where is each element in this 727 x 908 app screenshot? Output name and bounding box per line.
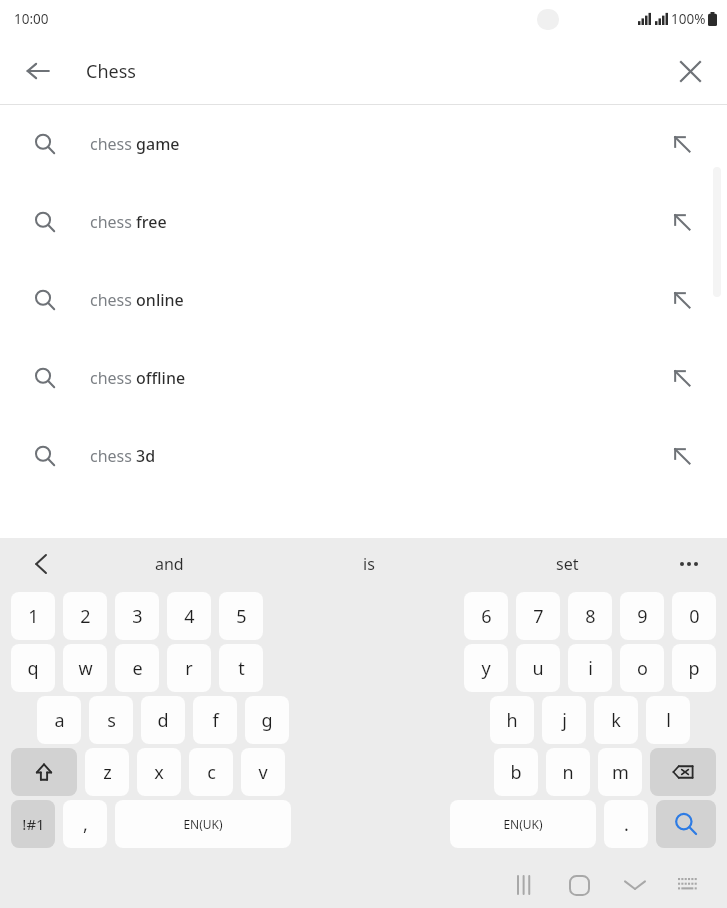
- button[interactable]: u: [516, 644, 560, 692]
- button[interactable]: a: [37, 696, 81, 744]
- button[interactable]: o: [620, 644, 664, 692]
- staticText: .: [624, 812, 629, 837]
- staticText: 4: [184, 604, 195, 629]
- button[interactable]: 1: [11, 592, 55, 640]
- button[interactable]: x: [137, 748, 181, 796]
- button[interactable]: Shift: [11, 748, 77, 796]
- staticText: r: [185, 656, 193, 681]
- staticText: chess free: [90, 211, 167, 233]
- button[interactable]: p: [672, 644, 716, 692]
- button[interactable]: 4: [167, 592, 211, 640]
- button[interactable]: i: [568, 644, 612, 692]
- button[interactable]: Insert suggestion: [637, 417, 727, 495]
- button[interactable]: chess 3d: [0, 417, 727, 495]
- button[interactable]: 0: [672, 592, 716, 640]
- button[interactable]: 6: [464, 592, 508, 640]
- staticText: z: [103, 760, 112, 785]
- staticText: chess online: [90, 289, 184, 311]
- button[interactable]: .: [604, 800, 648, 848]
- button[interactable]: q: [11, 644, 55, 692]
- staticText: chess game: [90, 133, 180, 155]
- button[interactable]: z: [85, 748, 129, 796]
- staticText: q: [27, 656, 39, 681]
- button[interactable]: chess game: [0, 105, 727, 183]
- button[interactable]: k: [594, 696, 638, 744]
- button[interactable]: Recents: [499, 862, 551, 908]
- staticText: EN(UK): [503, 816, 543, 832]
- staticText: o: [637, 656, 648, 681]
- staticText: l: [666, 708, 671, 733]
- button[interactable]: e: [115, 644, 159, 692]
- staticText: Chess: [86, 59, 136, 84]
- button[interactable]: v: [241, 748, 285, 796]
- button[interactable]: t: [219, 644, 263, 692]
- staticText: 0: [689, 604, 700, 629]
- staticText: v: [258, 760, 268, 785]
- staticText: EN(UK): [183, 816, 223, 832]
- staticText: and: [155, 553, 184, 575]
- staticText: x: [154, 760, 164, 785]
- button[interactable]: Previous suggestions: [22, 544, 62, 584]
- button[interactable]: chess online: [0, 261, 727, 339]
- button[interactable]: 9: [620, 592, 664, 640]
- button[interactable]: Insert suggestion: [637, 105, 727, 183]
- button[interactable]: f: [193, 696, 237, 744]
- button[interactable]: b: [494, 748, 538, 796]
- button[interactable]: 5: [219, 592, 263, 640]
- staticText: i: [588, 656, 593, 681]
- button[interactable]: 8: [568, 592, 612, 640]
- staticText: 5: [236, 604, 247, 629]
- button[interactable]: Home: [551, 862, 607, 908]
- button[interactable]: w: [63, 644, 107, 692]
- button[interactable]: y: [464, 644, 508, 692]
- button[interactable]: and: [70, 538, 269, 590]
- button[interactable]: chess free: [0, 183, 727, 261]
- staticText: f: [212, 708, 219, 733]
- button[interactable]: ,: [63, 800, 107, 848]
- staticText: s: [107, 708, 116, 733]
- button[interactable]: Back: [12, 45, 64, 97]
- button[interactable]: g: [245, 696, 289, 744]
- button[interactable]: is: [269, 538, 468, 590]
- button[interactable]: d: [141, 696, 185, 744]
- staticText: b: [510, 760, 522, 785]
- staticText: h: [506, 708, 518, 733]
- button[interactable]: More options: [669, 544, 709, 584]
- button[interactable]: Insert suggestion: [637, 183, 727, 261]
- staticText: 10:00: [14, 10, 49, 28]
- button[interactable]: m: [598, 748, 642, 796]
- button[interactable]: r: [167, 644, 211, 692]
- button[interactable]: EN(UK): [115, 800, 291, 848]
- button[interactable]: s: [89, 696, 133, 744]
- staticText: !#1: [22, 814, 45, 834]
- button[interactable]: Search: [656, 800, 716, 848]
- button[interactable]: 7: [516, 592, 560, 640]
- staticText: a: [54, 708, 65, 733]
- button[interactable]: !#1: [11, 800, 55, 848]
- button[interactable]: Hide keyboard: [607, 862, 663, 908]
- button[interactable]: Clear: [665, 46, 715, 96]
- button[interactable]: h: [490, 696, 534, 744]
- staticText: p: [688, 656, 700, 681]
- staticText: t: [238, 656, 245, 681]
- staticText: chess 3d: [90, 445, 156, 467]
- button[interactable]: j: [542, 696, 586, 744]
- button[interactable]: Switch keyboard: [663, 862, 713, 908]
- staticText: set: [556, 553, 579, 575]
- staticText: 2: [80, 604, 91, 629]
- staticText: u: [532, 656, 544, 681]
- button[interactable]: 2: [63, 592, 107, 640]
- staticText: ,: [83, 812, 88, 837]
- staticText: is: [363, 553, 375, 575]
- staticText: 8: [585, 604, 596, 629]
- button[interactable]: l: [646, 696, 690, 744]
- button[interactable]: Insert suggestion: [637, 261, 727, 339]
- button[interactable]: c: [189, 748, 233, 796]
- button[interactable]: EN(UK): [450, 800, 596, 848]
- button[interactable]: Backspace: [650, 748, 716, 796]
- button[interactable]: set: [468, 538, 667, 590]
- button[interactable]: 3: [115, 592, 159, 640]
- button[interactable]: n: [546, 748, 590, 796]
- button[interactable]: Insert suggestion: [637, 339, 727, 417]
- button[interactable]: chess offline: [0, 339, 727, 417]
